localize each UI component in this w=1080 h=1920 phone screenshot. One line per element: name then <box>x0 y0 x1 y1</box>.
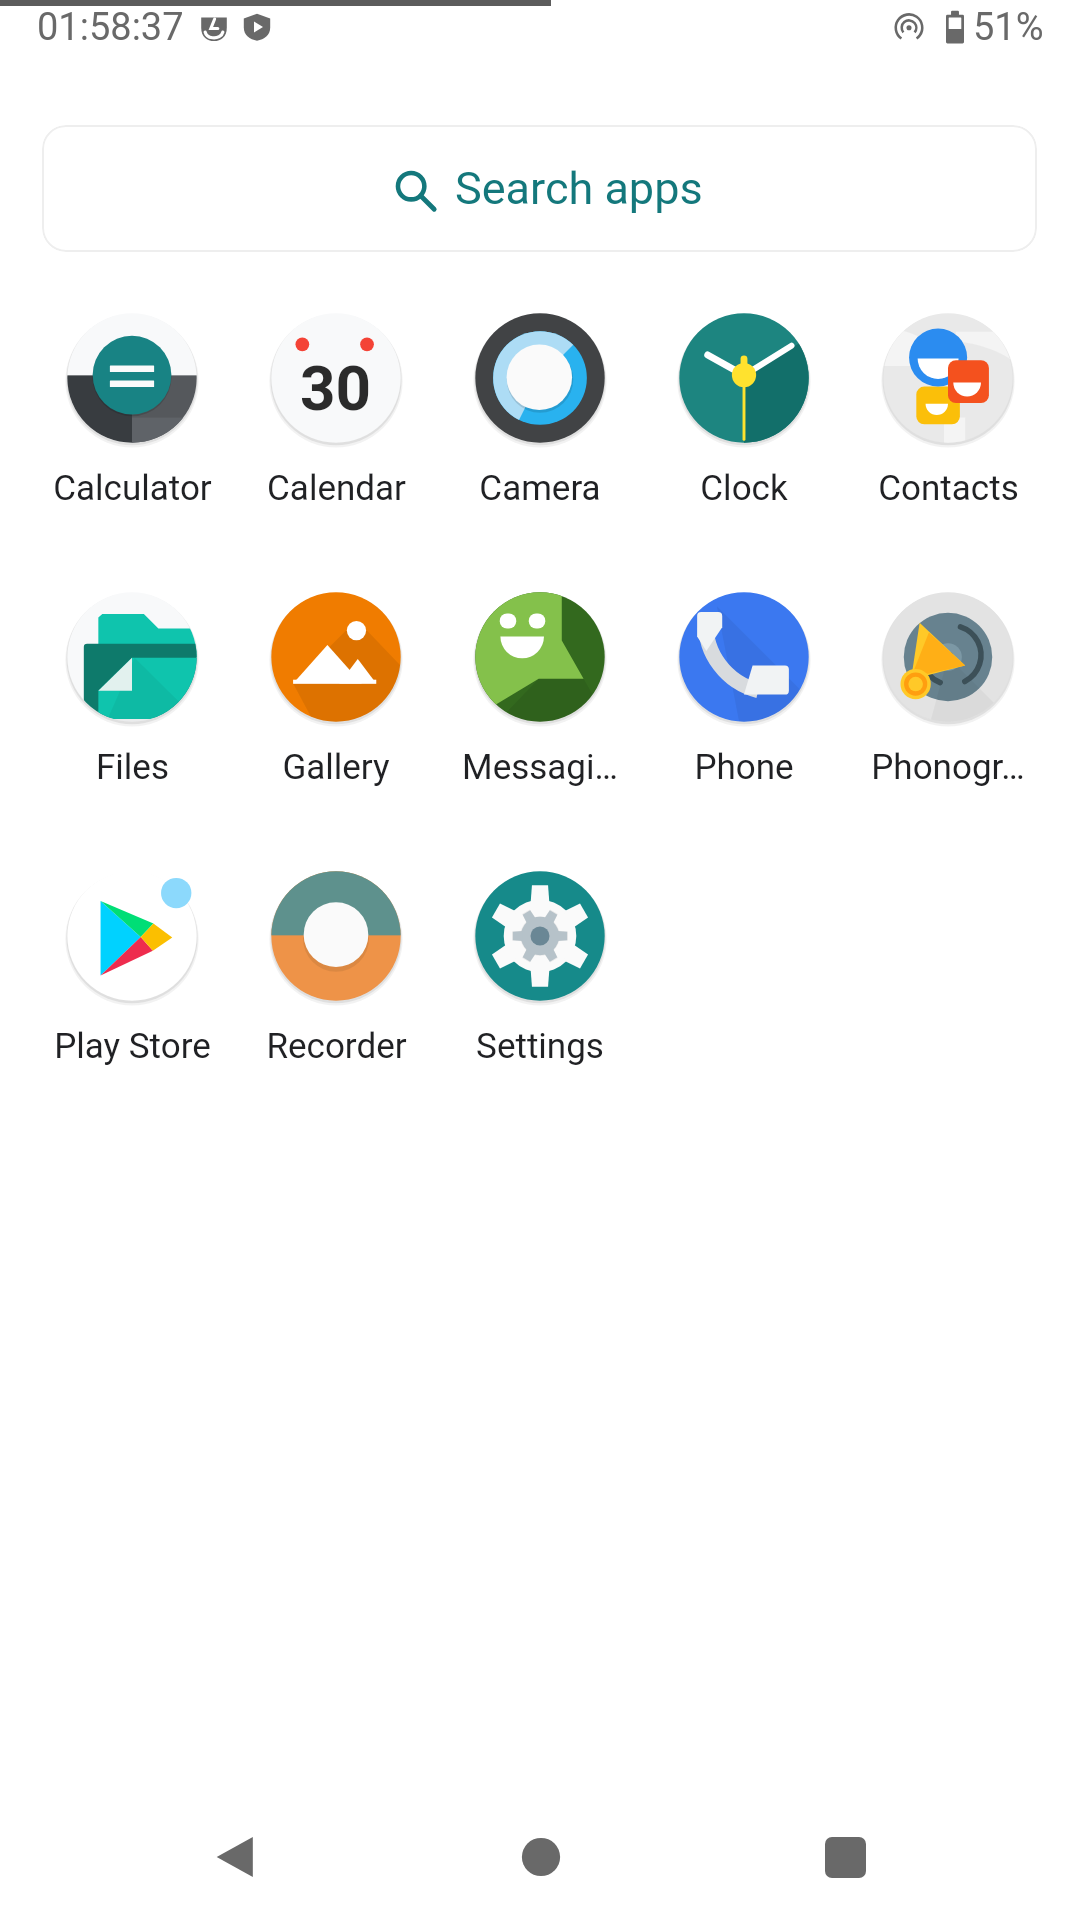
button[interactable]: Calculator <box>30 312 234 591</box>
staticText: 01:58:37 <box>37 5 184 50</box>
button[interactable]: Search apps <box>42 125 1037 252</box>
button[interactable]: Settings <box>438 870 642 1149</box>
button[interactable]: Files <box>30 591 234 870</box>
staticText: Contacts <box>878 468 1019 509</box>
staticText: Recorder <box>266 1026 407 1067</box>
button[interactable]: Recent apps <box>693 1794 998 1920</box>
button[interactable]: Play Store <box>30 870 234 1149</box>
button[interactable]: Messagi… <box>438 591 642 870</box>
button[interactable]: Camera <box>438 312 642 591</box>
staticText: Phonogr… <box>871 747 1025 788</box>
staticText: Calculator <box>53 468 212 509</box>
button[interactable]: Phonogr… <box>846 591 1050 870</box>
button[interactable]: Clock <box>642 312 846 591</box>
button[interactable]: 30 <box>234 312 438 591</box>
staticText: Play Store <box>54 1026 211 1067</box>
staticText: Settings <box>476 1026 604 1067</box>
staticText: Calendar <box>267 468 406 509</box>
staticText: Camera <box>479 468 601 509</box>
staticText: 51% <box>973 5 1044 50</box>
button[interactable]: Back <box>83 1794 388 1920</box>
staticText: Messagi… <box>462 747 618 788</box>
staticText: Phone <box>694 747 794 788</box>
staticText: Files <box>96 747 169 788</box>
staticText: 30 <box>300 352 372 425</box>
button[interactable]: Home <box>388 1794 693 1920</box>
button[interactable]: Contacts <box>846 312 1050 591</box>
button[interactable]: Gallery <box>234 591 438 870</box>
staticText: Search apps <box>455 162 703 215</box>
button[interactable]: Phone <box>642 591 846 870</box>
button[interactable]: Recorder <box>234 870 438 1149</box>
staticText: Clock <box>700 468 788 509</box>
staticText: Gallery <box>282 747 390 788</box>
